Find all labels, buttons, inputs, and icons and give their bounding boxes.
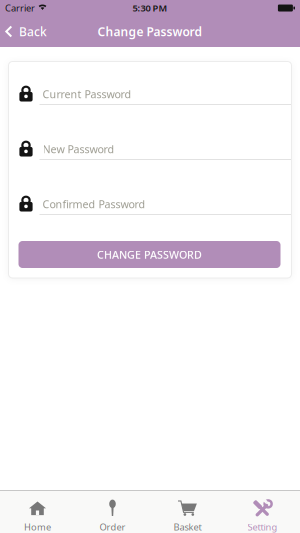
secureTextField[interactable]: Confirmed Password: [42, 197, 291, 211]
button[interactable]: Setting: [225, 492, 300, 532]
button[interactable]: Order: [75, 492, 150, 532]
staticText: Back: [19, 23, 47, 39]
button[interactable]: CHANGE PASSWORD: [18, 241, 280, 268]
button[interactable]: Basket: [150, 492, 225, 532]
staticText: Current Password: [42, 87, 131, 101]
staticText: Confirmed Password: [42, 197, 145, 211]
staticText: CHANGE PASSWORD: [97, 247, 202, 262]
staticText: Change Password: [97, 23, 202, 39]
staticText: 5:30 PM: [132, 2, 167, 14]
button[interactable]: Home: [0, 492, 75, 532]
staticText: Home: [24, 521, 51, 533]
secureTextField[interactable]: New Password: [42, 142, 291, 156]
staticText: New Password: [42, 142, 114, 156]
secureTextField[interactable]: Current Password: [42, 87, 291, 101]
staticText: Carrier: [5, 2, 35, 14]
staticText: Basket: [173, 521, 201, 533]
staticText: Setting: [247, 521, 277, 533]
button[interactable]: Back: [0, 23, 47, 39]
staticText: Order: [99, 521, 125, 533]
